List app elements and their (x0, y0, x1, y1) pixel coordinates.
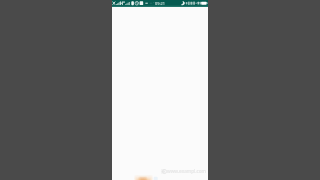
button[interactable]: www.exampl.com (167, 168, 206, 174)
button[interactable]: Ad choices info (160, 168, 167, 175)
staticText: 09:21 (155, 1, 165, 6)
button[interactable]: Ad choices info (112, 166, 208, 180)
other: Status bar (112, 0, 208, 7)
